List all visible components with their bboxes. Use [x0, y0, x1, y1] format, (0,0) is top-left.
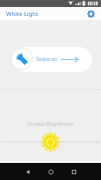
staticText: White Light — [6, 10, 39, 18]
button[interactable]: Home — [39, 163, 62, 180]
button[interactable]: Settings — [85, 8, 97, 20]
button[interactable]: Swipe on — [14, 47, 92, 72]
button[interactable]: Recent apps — [62, 163, 85, 180]
button[interactable]: Flashlight — [10, 47, 34, 71]
staticText: Screen Brightness — [0, 120, 101, 127]
staticText: Swipe on — [36, 56, 58, 63]
button[interactable]: Back — [16, 163, 39, 180]
button[interactable] — [0, 134, 101, 150]
